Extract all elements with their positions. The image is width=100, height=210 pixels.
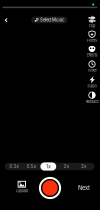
staticText: Retouch (85, 99, 98, 104)
button[interactable]: Next (74, 182, 94, 194)
button[interactable]: 3x (75, 162, 91, 171)
button[interactable]: Select Music (31, 16, 67, 23)
staticText: Select Music (40, 17, 64, 22)
button[interactable]: 0.5x (23, 162, 39, 171)
button[interactable]: Effects (84, 45, 100, 57)
staticText: Next (78, 185, 90, 191)
button[interactable]: 1x (40, 162, 56, 171)
button[interactable]: Record (38, 176, 62, 200)
button[interactable]: Flip (84, 16, 100, 28)
staticText: 3x (81, 164, 86, 169)
staticText: Timer (87, 68, 96, 72)
button[interactable]: Filters (84, 31, 100, 43)
staticText: 2x (64, 164, 69, 169)
button[interactable]: Timer (84, 60, 100, 72)
staticText: 0.5x (27, 164, 36, 169)
staticText: Flip (89, 24, 95, 28)
button[interactable]: Upload (12, 181, 32, 193)
button[interactable]: 2x (58, 162, 74, 171)
button[interactable]: Back (0, 14, 12, 26)
staticText: Flash (87, 84, 96, 88)
staticText: 1x (46, 164, 50, 169)
button[interactable]: Retouch (84, 92, 100, 104)
staticText: Effects (86, 53, 97, 57)
button[interactable]: 0.3x (6, 162, 22, 171)
staticText: 0.3x (9, 164, 18, 169)
button[interactable]: Flash (84, 76, 100, 88)
staticText: Upload (16, 189, 28, 193)
staticText: Filters (87, 38, 97, 43)
